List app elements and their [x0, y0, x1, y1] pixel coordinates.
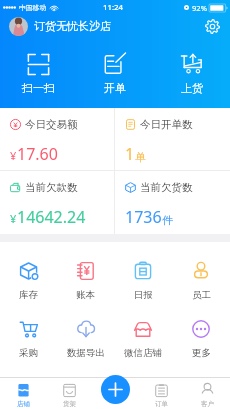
staticText: 17.60 [17, 143, 58, 165]
staticText: 1736 [125, 206, 162, 228]
button[interactable]: 当前欠货数 [115, 171, 230, 234]
staticText: 件 [162, 213, 173, 227]
button[interactable]: 今日开单数 [115, 108, 230, 170]
button[interactable]: 当前欠款数 [0, 171, 114, 234]
button[interactable]: 客户 [184, 378, 230, 409]
button[interactable]: 库存 [0, 261, 57, 301]
button[interactable]: 更多 [172, 319, 230, 359]
staticText: 客户 [201, 400, 214, 408]
staticText: 员工 [192, 289, 211, 301]
button[interactable]: 店铺 [0, 378, 46, 409]
staticText: 订单 [155, 400, 168, 408]
staticText: 货架 [63, 400, 76, 408]
staticText: 库存 [19, 289, 38, 301]
staticText: 单 [135, 150, 146, 164]
staticText: 日报 [134, 289, 153, 301]
staticText: 采购 [19, 347, 38, 359]
staticText: 店铺 [17, 400, 30, 408]
button[interactable]: 员工 [172, 261, 230, 301]
staticText: 14642.24 [17, 206, 86, 228]
staticText: 11:24 [103, 2, 123, 13]
button[interactable]: 上货 [153, 52, 230, 108]
staticText: ¥ [10, 211, 17, 226]
staticText: 账本 [76, 289, 95, 301]
staticText: 更多 [192, 347, 211, 359]
staticText: 微信店铺 [124, 347, 162, 359]
button[interactable]: 今日交易额 [0, 108, 114, 170]
button[interactable]: 货架 [46, 378, 92, 409]
button[interactable]: 账本 [57, 261, 114, 301]
staticText: 开单 [104, 81, 126, 95]
staticText: 中国移动 [19, 3, 47, 12]
staticText: 当前欠款数 [25, 181, 78, 194]
button[interactable]: Settings [202, 16, 222, 36]
button[interactable]: 微信店铺 [114, 319, 172, 359]
staticText: 92% [192, 3, 207, 13]
button[interactable]: 开单 [76, 52, 153, 108]
button[interactable]: 扫一扫 [0, 52, 76, 108]
button[interactable]: 采购 [0, 319, 57, 359]
staticText: 上货 [181, 81, 203, 95]
staticText: ¥ [10, 148, 17, 163]
button[interactable]: 订单 [138, 378, 184, 409]
staticText: 数据导出 [67, 347, 105, 359]
button[interactable]: 订货无忧长沙店 [34, 19, 111, 33]
staticText: 今日开单数 [140, 118, 193, 131]
staticText: 今日交易额 [25, 118, 78, 131]
staticText: 1 [125, 143, 135, 165]
button[interactable]: Add [101, 375, 130, 404]
staticText: 扫一扫 [22, 81, 55, 95]
button[interactable]: Profile avatar [9, 17, 28, 36]
button[interactable]: 日报 [114, 261, 172, 301]
button[interactable]: 数据导出 [57, 319, 114, 359]
staticText: 当前欠货数 [140, 181, 193, 194]
